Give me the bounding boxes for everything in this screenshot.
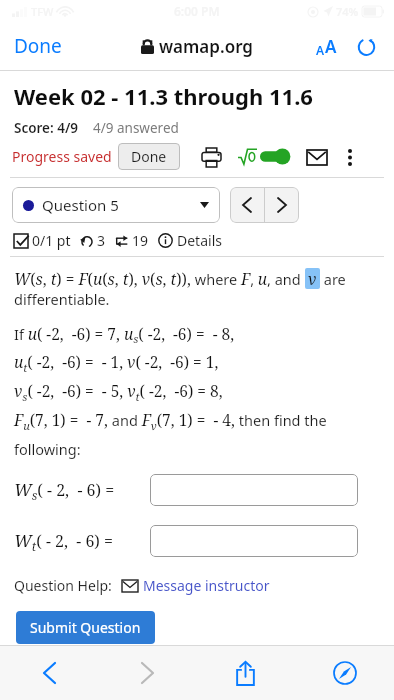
staticText: A xyxy=(316,42,325,58)
staticText: 0/1 pt xyxy=(32,231,71,250)
button[interactable]: Text size xyxy=(308,28,344,64)
button[interactable]: Email xyxy=(304,144,330,170)
staticText: If u( -2, -6) = 7, us( -2, -6) = - 8, ut… xyxy=(14,323,327,460)
button[interactable]: Previous question xyxy=(230,187,264,223)
staticText: v xyxy=(308,268,317,289)
staticText: Submit Question xyxy=(30,618,141,637)
button[interactable]: Math input toggle xyxy=(238,148,292,165)
staticText: Week 02 - 11.3 through 11.6 xyxy=(14,81,313,111)
button[interactable]: Done xyxy=(118,143,180,170)
button[interactable]: Details xyxy=(158,231,222,250)
staticText: Question Help: xyxy=(14,576,112,595)
staticText: 19 xyxy=(132,231,149,250)
button[interactable]: Done xyxy=(0,25,76,67)
staticText: 3 xyxy=(97,231,106,250)
staticText: Details xyxy=(177,231,222,250)
staticText: wamap.org xyxy=(159,35,253,58)
staticText: W(s, t) = F(u(s, t), v(s, t)), where F, … xyxy=(14,268,305,289)
button[interactable]: Share xyxy=(196,646,295,700)
staticText: A xyxy=(325,35,337,58)
button[interactable]: More options xyxy=(338,145,362,169)
staticText: Message instructor xyxy=(143,576,270,595)
staticText: 74% xyxy=(336,4,359,19)
button[interactable]: Next question xyxy=(265,187,299,223)
button[interactable]: Question 5 xyxy=(12,187,220,223)
button[interactable]: Forward xyxy=(98,646,196,700)
staticText: Done xyxy=(14,33,62,59)
staticText: Question 5 xyxy=(42,195,119,215)
staticText: 4/9 answered xyxy=(93,119,179,137)
staticText: Done xyxy=(131,147,167,166)
button[interactable] xyxy=(150,525,358,557)
staticText: 6:00 PM xyxy=(174,3,220,19)
button[interactable]: Open in Safari xyxy=(295,646,394,700)
staticText: Ws( - 2, - 6) = xyxy=(14,478,115,503)
staticText: Score: 4/9 xyxy=(14,119,79,137)
button[interactable]: Submit Question xyxy=(16,611,155,644)
button[interactable]: Back xyxy=(0,646,98,700)
staticText: Wt( - 2, - 6) = xyxy=(14,529,113,554)
button[interactable]: Print xyxy=(198,144,224,170)
staticText: Progress saved xyxy=(12,147,112,166)
staticText: TFW xyxy=(31,4,54,19)
button[interactable]: Message instructor xyxy=(122,576,270,595)
button[interactable] xyxy=(150,474,358,506)
staticText: are xyxy=(320,269,346,289)
staticText: differentiable. xyxy=(14,289,110,309)
button[interactable]: Reload xyxy=(348,28,384,64)
